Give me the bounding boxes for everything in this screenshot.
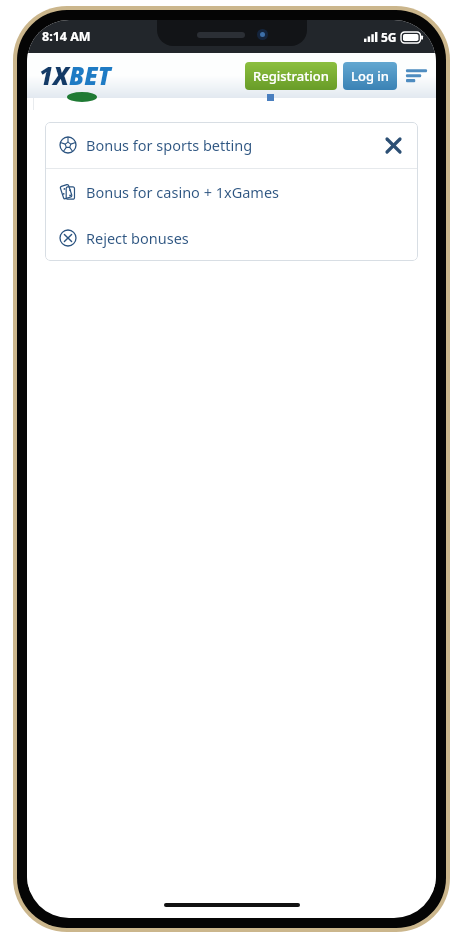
staticText: BET (69, 59, 111, 92)
staticText: 1X (39, 59, 69, 92)
staticText: Registration (253, 67, 329, 85)
staticText: 5G (381, 29, 397, 45)
staticText: 8:14 AM (42, 28, 91, 45)
button[interactable]: Registration (245, 62, 337, 90)
button[interactable]: Log in (343, 62, 397, 90)
staticText: Log in (351, 67, 389, 85)
staticText: Bonus for sports betting (86, 135, 380, 155)
staticText: Reject bonuses (86, 228, 189, 248)
button[interactable]: Close (380, 132, 406, 158)
button[interactable]: 1xBet home (39, 59, 111, 92)
button[interactable]: Bonus for sports betting (45, 122, 418, 168)
button[interactable]: Reject bonuses (45, 215, 418, 261)
staticText: Bonus for casino + 1xGames (86, 182, 280, 202)
button[interactable]: Bonus for casino + 1xGames (45, 169, 418, 215)
button[interactable]: Menu (403, 63, 429, 89)
